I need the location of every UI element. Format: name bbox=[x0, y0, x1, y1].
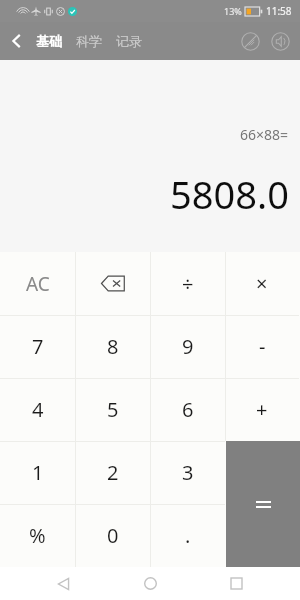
button[interactable]: Home bbox=[128, 567, 172, 600]
button[interactable]: AC bbox=[0, 252, 75, 315]
button[interactable]: Back bbox=[0, 24, 34, 58]
button[interactable]: Back bbox=[42, 567, 86, 600]
staticText: 0 bbox=[107, 522, 119, 549]
staticText: 3 bbox=[182, 459, 194, 486]
staticText: 11:58 bbox=[266, 4, 292, 18]
staticText: 4 bbox=[32, 396, 44, 423]
button[interactable]: Vibration bbox=[236, 27, 264, 55]
staticText: - bbox=[259, 333, 266, 360]
staticText: + bbox=[256, 396, 268, 423]
button[interactable]: × bbox=[225, 252, 299, 315]
button[interactable]: 0 bbox=[75, 504, 150, 567]
staticText: 8 bbox=[107, 333, 119, 360]
staticText: × bbox=[256, 270, 268, 297]
staticText: . bbox=[185, 522, 191, 549]
staticText: ÷ bbox=[182, 270, 194, 297]
staticText: % bbox=[29, 522, 46, 549]
button[interactable]: Recents bbox=[214, 567, 258, 600]
staticText: 5808.0 bbox=[170, 168, 289, 220]
button[interactable]: 记录 bbox=[114, 28, 144, 54]
button[interactable]: 4 bbox=[0, 378, 75, 441]
button[interactable]: 5 bbox=[75, 378, 150, 441]
staticText: 6 bbox=[182, 396, 194, 423]
button[interactable]: 科学 bbox=[74, 28, 104, 54]
staticText: 科学 bbox=[76, 33, 102, 49]
button[interactable]: 1 bbox=[0, 441, 75, 504]
other: Backspace bbox=[101, 275, 125, 292]
button[interactable]: 2 bbox=[75, 441, 150, 504]
button[interactable]: Sound bbox=[266, 27, 294, 55]
staticText: 9 bbox=[182, 333, 194, 360]
staticText: 13% bbox=[224, 5, 242, 17]
button[interactable]: 6 bbox=[150, 378, 225, 441]
button[interactable]: 3 bbox=[150, 441, 225, 504]
staticText: AC bbox=[26, 271, 50, 297]
button[interactable]: % bbox=[0, 504, 75, 567]
button[interactable]: + bbox=[225, 378, 299, 441]
button[interactable]: Backspace bbox=[75, 252, 150, 315]
staticText: 2 bbox=[107, 459, 119, 486]
button[interactable]: 8 bbox=[75, 315, 150, 378]
staticText: 基础 bbox=[36, 33, 62, 49]
button[interactable]: Equals bbox=[226, 441, 300, 567]
button[interactable]: 7 bbox=[0, 315, 75, 378]
staticText: 66×88= bbox=[240, 125, 289, 144]
button[interactable]: ÷ bbox=[150, 252, 225, 315]
button[interactable]: . bbox=[150, 504, 225, 567]
staticText: 记录 bbox=[116, 33, 142, 49]
button[interactable]: 基础 bbox=[34, 28, 64, 54]
button[interactable]: - bbox=[225, 315, 299, 378]
staticText: 5 bbox=[107, 396, 119, 423]
button[interactable]: 9 bbox=[150, 315, 225, 378]
staticText: 7 bbox=[32, 333, 44, 360]
staticText: 1 bbox=[32, 459, 44, 486]
